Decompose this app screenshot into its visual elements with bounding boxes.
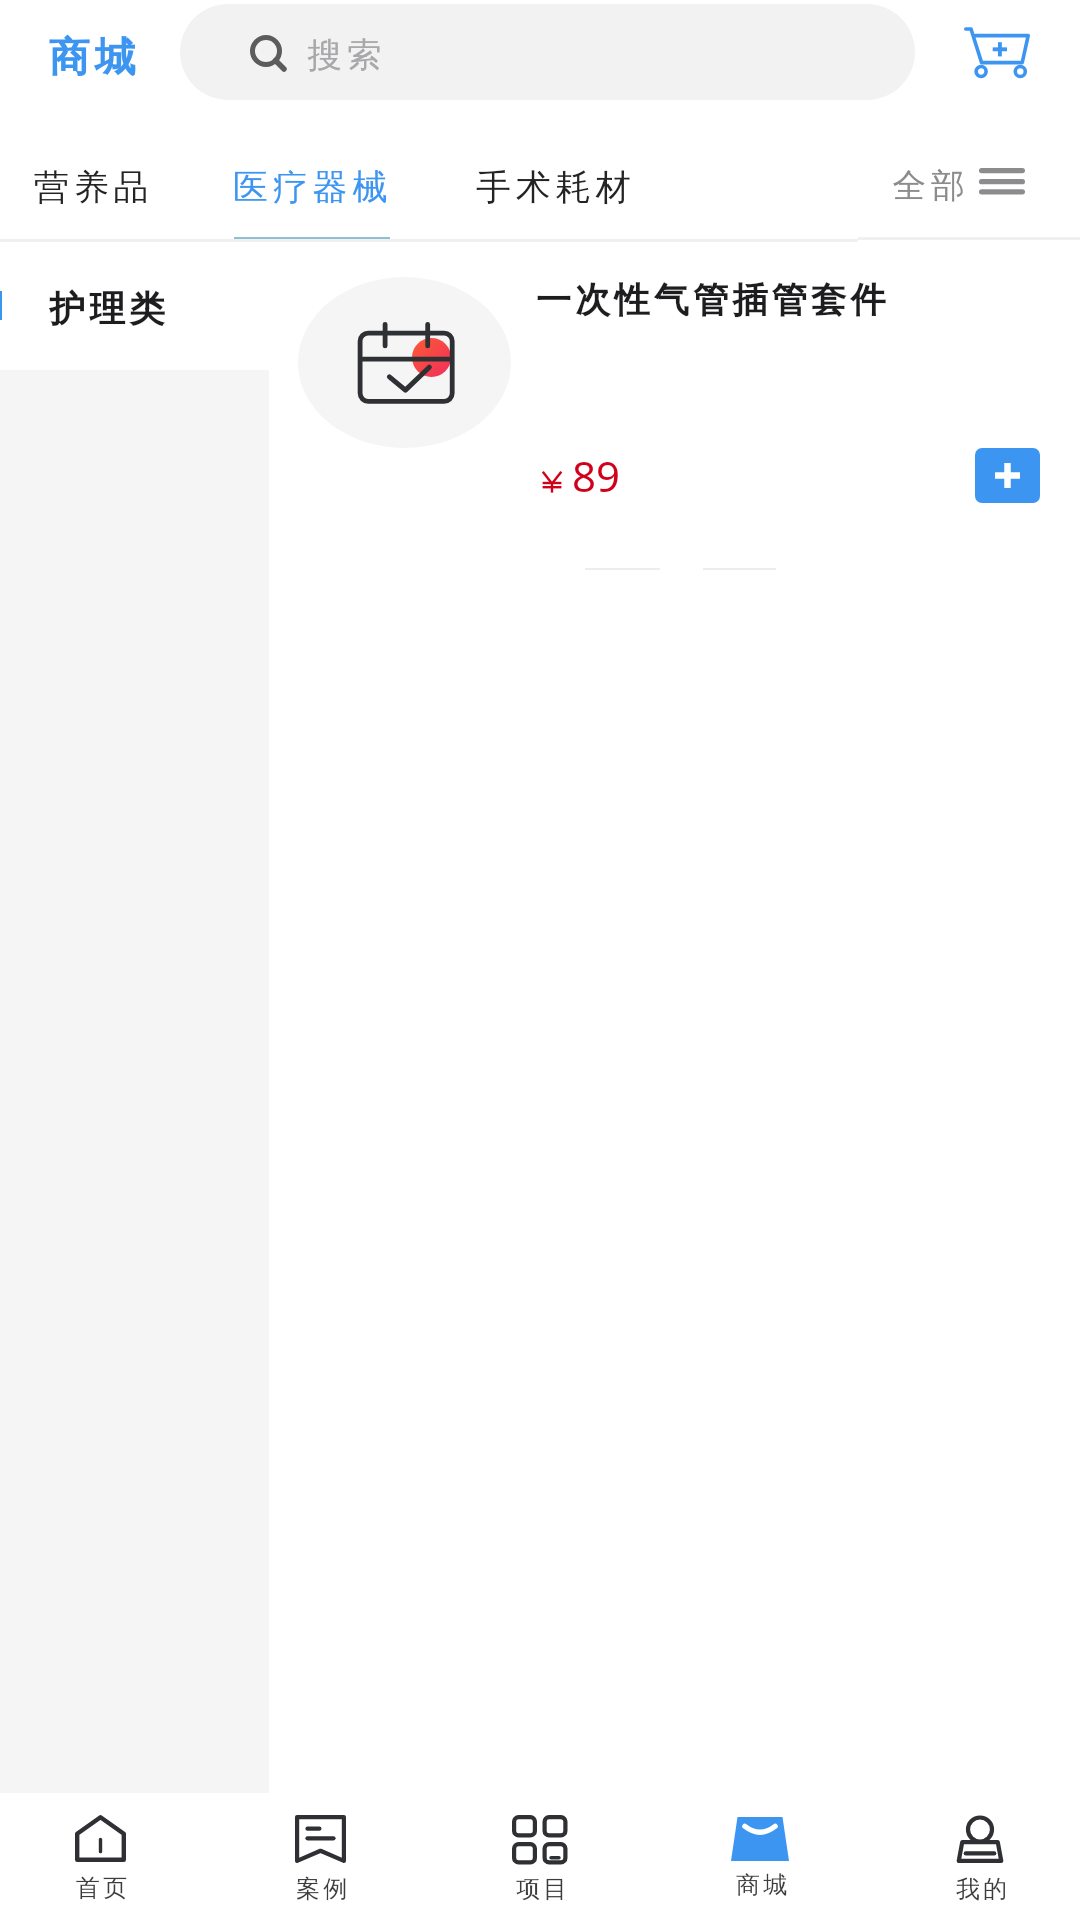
staticText: 商城	[736, 1870, 791, 1900]
staticText: 项目	[516, 1874, 571, 1904]
button[interactable]: Add to cart	[975, 448, 1040, 503]
staticText: 护理类	[47, 287, 167, 332]
staticText: 89	[572, 447, 621, 504]
button[interactable]: 搜索	[180, 4, 915, 100]
button[interactable]: 案例	[213, 1793, 433, 1920]
staticText: 案例	[296, 1874, 351, 1904]
button[interactable]: Shopping cart	[952, 16, 1042, 90]
staticText: 我的	[956, 1874, 1011, 1904]
button[interactable]: 全部	[873, 142, 1045, 204]
staticText: 营养品	[34, 165, 154, 209]
staticText: 首页	[76, 1873, 131, 1903]
button[interactable]: 首页	[0, 1793, 213, 1920]
button[interactable]: 我的	[873, 1793, 1080, 1920]
staticText: 手术耗材	[476, 165, 636, 209]
button[interactable]: 手术耗材	[460, 120, 652, 224]
staticText: 商城	[46, 32, 138, 83]
button[interactable]: 项目	[433, 1793, 653, 1920]
button[interactable]: 护理类	[0, 240, 269, 370]
staticText: 医疗器械	[233, 165, 393, 209]
staticText: 搜索	[305, 34, 384, 77]
staticText: 一次性气管插管套件	[536, 278, 890, 322]
button[interactable]: 商城	[653, 1793, 873, 1920]
button[interactable]: 营养品	[18, 120, 170, 224]
button[interactable]: 商城	[46, 32, 138, 83]
staticText: 全部	[890, 165, 967, 207]
button[interactable]: 医疗器械	[217, 120, 409, 224]
